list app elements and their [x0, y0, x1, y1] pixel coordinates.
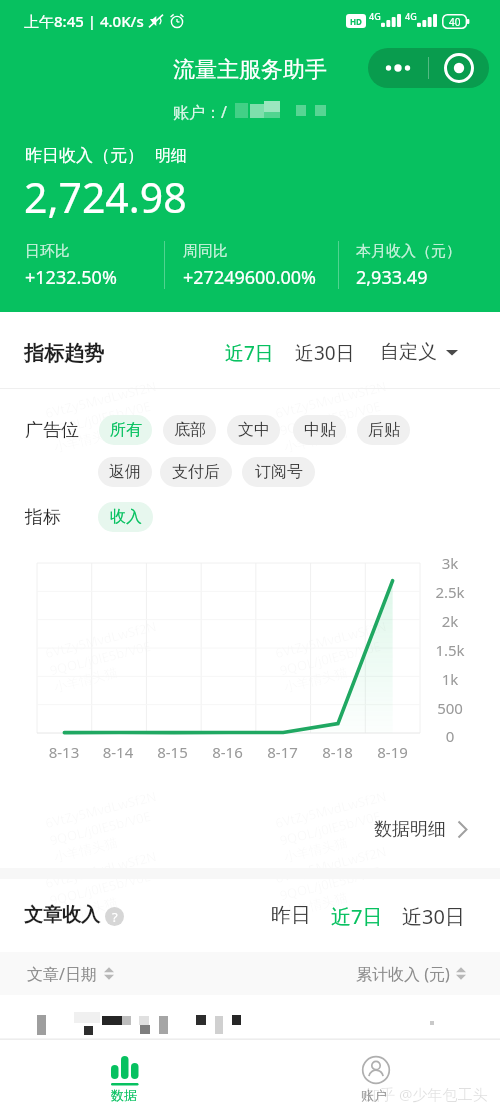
button[interactable]: 数据明细 — [374, 818, 468, 841]
staticText: 6VtZy5MvdLwSf2N — [273, 617, 388, 662]
staticText: 收入 — [110, 507, 142, 527]
staticText: 后贴 — [368, 420, 400, 440]
staticText: 8-15 — [145, 742, 200, 762]
button[interactable]: Help — [105, 907, 124, 926]
staticText: 2,933.49 — [356, 265, 428, 290]
staticText: 账户 — [361, 1087, 387, 1103]
staticText: 9QOL/j0lE5b/V0E — [278, 807, 383, 849]
staticText: 小羊情头猫 — [282, 664, 349, 695]
button[interactable]: 近7日 — [225, 340, 274, 366]
staticText: 近7日 — [225, 340, 274, 366]
staticText: 近30日 — [295, 340, 355, 366]
staticText: 昨日收入（元） — [25, 145, 144, 166]
staticText: 近7日 — [331, 903, 383, 930]
button[interactable]: 累计收入 (元) — [356, 952, 466, 995]
staticText: 1.5k — [426, 640, 474, 660]
button[interactable]: 返佣 — [98, 457, 152, 487]
staticText: 小羊情头猫 — [282, 889, 349, 920]
button[interactable]: 近30日 — [402, 903, 465, 930]
staticText: 2.5k — [426, 582, 474, 602]
staticText: 昨日 — [271, 903, 311, 928]
button[interactable]: 昨日 — [271, 903, 311, 928]
staticText: 近30日 — [402, 903, 465, 930]
staticText: 文中 — [238, 420, 270, 440]
staticText: 广告位 — [25, 419, 79, 442]
button[interactable]: 支付后 — [160, 457, 232, 487]
staticText: 9QOL/j0lE5b/V0E — [278, 637, 383, 679]
staticText: 文章收入 — [24, 903, 100, 927]
staticText: 小羊情头猫 — [282, 424, 349, 455]
staticText: 支付后 — [172, 462, 220, 482]
staticText: 6VtZy5MvdLwSf2N — [43, 847, 158, 892]
staticText: 订阅号 — [255, 462, 303, 482]
button[interactable]: 账户 — [312, 1040, 437, 1111]
staticText: 8-14 — [91, 742, 145, 762]
staticText: 8-13 — [37, 742, 91, 762]
staticText: +27249600.00% — [183, 265, 317, 290]
staticText: 4G — [369, 10, 381, 22]
button[interactable]: 文中 — [227, 415, 280, 445]
staticText: 9QOL/j0lE5b/V0E — [278, 862, 383, 904]
staticText: 3k — [426, 553, 474, 573]
staticText: 自定义 — [380, 340, 437, 364]
staticText: 8-16 — [200, 742, 255, 762]
staticText: 知乎 @少年包工头 — [365, 1084, 488, 1104]
staticText: 小羊情头猫 — [52, 894, 119, 925]
staticText: ? — [112, 908, 118, 926]
staticText: 中贴 — [304, 420, 336, 440]
staticText: 8-17 — [255, 742, 310, 762]
button[interactable]: 文章/日期 — [27, 952, 114, 995]
staticText: 6VtZy5MvdLwSf2N — [273, 787, 388, 832]
staticText: 日环比 — [25, 242, 70, 261]
staticText: 1k — [426, 669, 474, 689]
staticText: 4G — [405, 10, 417, 22]
staticText: 9QOL/j0lE5b/V0E — [48, 397, 153, 439]
button[interactable]: 自定义 — [380, 340, 458, 364]
staticText: 上午8:45 | 4.0K/s — [24, 11, 144, 31]
staticText: 小羊情头猫 — [52, 424, 119, 455]
staticText: 指标 — [25, 506, 61, 529]
staticText: 6VtZy5MvdLwSf2N — [43, 377, 158, 422]
button[interactable]: 后贴 — [357, 415, 410, 445]
staticText: 指标趋势 — [24, 341, 104, 366]
staticText: 文章/日期 — [27, 963, 97, 985]
staticText: 本月收入（元） — [356, 242, 461, 261]
staticText: 9QOL/j0lE5b/V0E — [48, 867, 153, 909]
staticText: 8-18 — [310, 742, 365, 762]
button[interactable]: Close — [429, 48, 489, 88]
staticText: 0 — [426, 726, 474, 746]
button[interactable]: 明细 — [155, 146, 187, 166]
staticText: HD — [350, 16, 362, 27]
button[interactable]: More options — [368, 48, 428, 88]
button[interactable]: 收入 — [98, 502, 153, 532]
staticText: +1232.50% — [25, 265, 117, 290]
staticText: 返佣 — [109, 462, 141, 482]
button[interactable]: 中贴 — [293, 415, 346, 445]
staticText: 9QOL/j0lE5b/V0E — [278, 397, 383, 439]
staticText: 累计收入 (元) — [356, 963, 450, 985]
button[interactable]: 底部 — [163, 415, 216, 445]
staticText: 500 — [426, 698, 474, 718]
staticText: 40 — [449, 15, 461, 29]
staticText: 数据明细 — [374, 818, 446, 841]
staticText: 流量主服务助手 — [173, 56, 327, 84]
staticText: 2k — [426, 611, 474, 631]
button[interactable]: 订阅号 — [242, 457, 315, 487]
staticText: 底部 — [174, 420, 206, 440]
button[interactable]: 数据 — [62, 1040, 187, 1111]
button[interactable]: 近30日 — [295, 340, 355, 366]
button[interactable]: 所有 — [99, 415, 152, 445]
staticText: 6VtZy5MvdLwSf2N — [273, 377, 388, 422]
staticText: 所有 — [110, 420, 142, 440]
button[interactable]: 近7日 — [331, 903, 383, 930]
staticText: 明细 — [155, 146, 187, 166]
staticText: 8-19 — [365, 742, 420, 762]
staticText: 周同比 — [183, 242, 228, 261]
